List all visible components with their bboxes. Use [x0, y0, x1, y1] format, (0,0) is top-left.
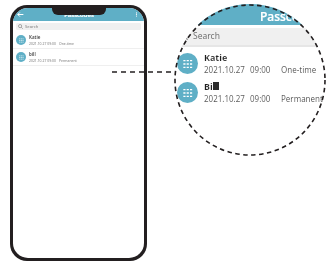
button[interactable]: More options: [133, 11, 140, 18]
staticText: 09:00: [250, 93, 271, 104]
button[interactable]: Back: [16, 10, 25, 19]
staticText: One-time: [281, 64, 317, 75]
staticText: 09:00: [250, 64, 271, 75]
button[interactable]: Katie: [177, 50, 325, 76]
button[interactable]: bill: [13, 49, 144, 65]
staticText: Search: [193, 30, 220, 42]
staticText: Katie: [29, 34, 41, 40]
staticText: Bi: [204, 80, 213, 92]
staticText: Search: [25, 24, 39, 30]
staticText: bill: [29, 51, 36, 57]
staticText: One-time: [59, 41, 74, 46]
button[interactable]: Bi: [177, 79, 325, 105]
staticText: 2021.10.27 09:00: [29, 58, 56, 63]
button[interactable]: Search: [16, 23, 141, 30]
staticText: Passcodes: [64, 11, 94, 19]
staticText: 2021.10.27 09:00: [29, 41, 56, 46]
staticText: Permanent: [281, 93, 323, 104]
staticText: Passcodes: [260, 8, 320, 24]
button[interactable]: Search: [179, 28, 299, 43]
staticText: Permanent: [59, 58, 77, 63]
staticText: 2021.10.27: [204, 93, 245, 104]
button[interactable]: Katie: [13, 32, 144, 48]
staticText: 2021.10.27: [204, 64, 245, 75]
staticText: Katie: [204, 51, 228, 63]
